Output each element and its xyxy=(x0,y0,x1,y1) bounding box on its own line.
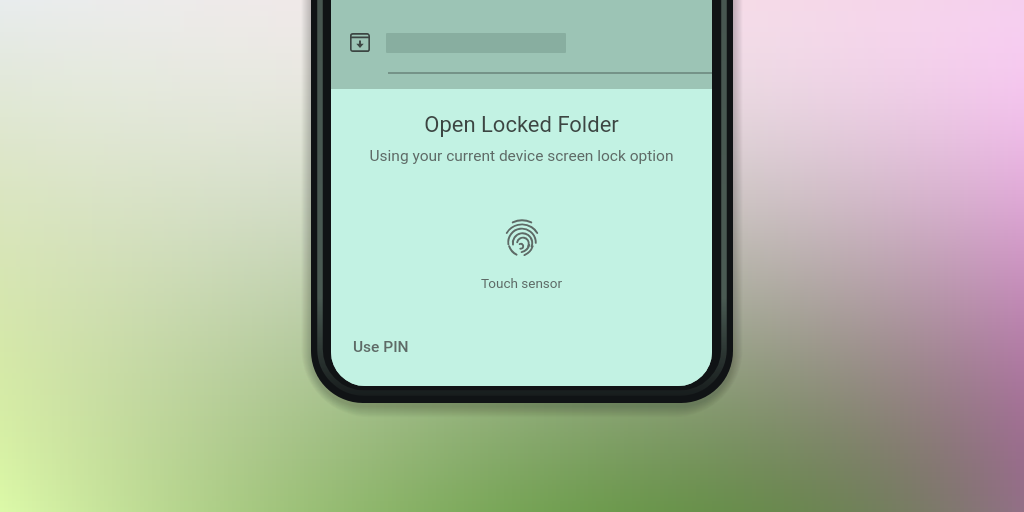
staticText: Open Locked Folder xyxy=(331,112,712,138)
staticText: Use PIN xyxy=(353,338,409,356)
button[interactable]: Fingerprint sensor xyxy=(500,216,544,260)
staticText: Touch sensor xyxy=(331,275,712,291)
staticText: Using your current device screen lock op… xyxy=(331,147,712,165)
button[interactable]: Archive xyxy=(347,29,372,54)
button[interactable]: Use PIN xyxy=(345,333,417,361)
